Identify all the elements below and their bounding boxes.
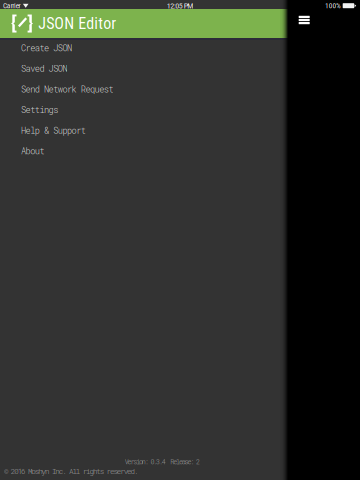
staticText: JSON Editor [38,14,116,33]
button[interactable]: Settings [0,99,288,120]
button[interactable]: Create JSON [0,38,288,58]
staticText: Help & Support [21,125,86,136]
staticText: About [21,145,44,157]
button[interactable]: Menu [290,7,318,33]
staticText: Send Network Request [21,83,113,95]
staticText: 12:05 PM [167,1,193,11]
staticText: © 2016 Moshyn Inc. All rights reserved. [4,466,138,476]
button[interactable]: Send Network Request [0,79,288,99]
button[interactable]: About [0,141,288,161]
staticText: 100% [325,1,341,10]
staticText: Create JSON [21,42,72,54]
staticText: Saved JSON [21,63,67,74]
button[interactable]: Saved JSON [0,58,288,79]
staticText: Version: 0.3.4 Release: 2 [125,457,200,466]
button[interactable]: Help & Support [0,120,288,141]
staticText: Settings [21,104,58,115]
staticText: Carrier [3,1,20,10]
